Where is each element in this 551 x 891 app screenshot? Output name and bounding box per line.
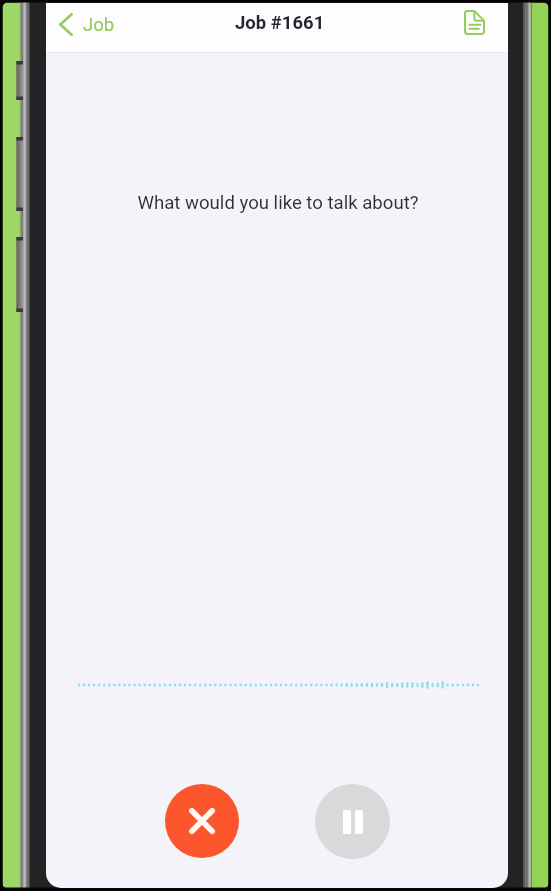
button[interactable]: Job [59, 4, 115, 45]
button[interactable]: Stop recording [165, 784, 239, 858]
button[interactable]: Job documents [455, 3, 493, 42]
staticText: What would you like to talk about? [137, 192, 419, 214]
staticText: Job #1661 [235, 12, 325, 34]
button[interactable]: Pause recording [315, 784, 390, 859]
staticText: Job [83, 14, 115, 36]
